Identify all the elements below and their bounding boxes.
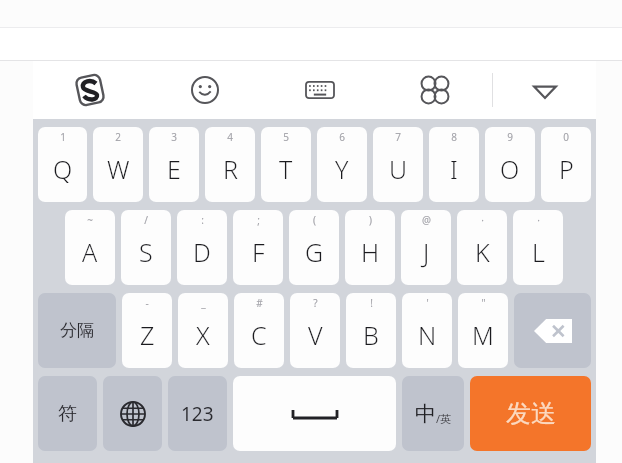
staticText: X: [196, 318, 210, 352]
staticText: :: [201, 213, 204, 227]
button[interactable]: 123: [168, 376, 227, 451]
button[interactable]: Switch input language: [103, 376, 162, 451]
button[interactable]: 3: [149, 127, 199, 202]
button[interactable]: 6: [317, 127, 367, 202]
staticText: ·: [481, 213, 484, 227]
button[interactable]: 1: [38, 127, 87, 202]
staticText: Y: [335, 152, 349, 186]
staticText: C: [251, 318, 267, 352]
staticText: 1: [60, 130, 66, 144]
staticText: U: [389, 152, 408, 186]
button[interactable]: Hide keyboard: [493, 61, 596, 119]
staticText: 2: [115, 130, 121, 144]
staticText: 中: [415, 401, 436, 427]
button[interactable]: ': [402, 293, 452, 368]
staticText: /: [144, 213, 148, 227]
staticText: 分隔: [60, 320, 94, 341]
staticText: 4: [227, 130, 233, 144]
staticText: K: [475, 235, 490, 269]
staticText: M: [472, 318, 494, 352]
staticText: #: [256, 296, 263, 310]
button[interactable]: Sogou input: [33, 61, 147, 119]
staticText: ?: [313, 296, 318, 310]
staticText: ~: [87, 213, 93, 227]
staticText: T: [279, 152, 293, 186]
staticText: W: [107, 152, 130, 186]
staticText: _: [201, 296, 206, 310]
staticText: ·: [537, 213, 540, 227]
button[interactable]: ~: [65, 210, 115, 285]
staticText: F: [252, 235, 265, 269]
staticText: S: [139, 235, 153, 269]
button[interactable]: Space: [233, 376, 396, 451]
staticText: 9: [507, 130, 513, 144]
button[interactable]: Keyboard settings: [262, 61, 377, 119]
button[interactable]: 8: [429, 127, 479, 202]
button[interactable]: 分隔: [38, 293, 116, 368]
staticText: H: [361, 235, 380, 269]
staticText: P: [559, 152, 574, 186]
button[interactable]: :: [177, 210, 227, 285]
button[interactable]: ?: [290, 293, 340, 368]
button[interactable]: Backspace: [514, 293, 591, 368]
button[interactable]: More features: [377, 61, 492, 119]
button[interactable]: _: [178, 293, 228, 368]
staticText: R: [223, 152, 238, 186]
staticText: ": [481, 296, 486, 310]
button[interactable]: Emoji: [147, 61, 262, 119]
staticText: ;: [257, 213, 260, 227]
button[interactable]: ": [458, 293, 508, 368]
button[interactable]: !: [346, 293, 396, 368]
button[interactable]: 发送: [470, 376, 591, 451]
button[interactable]: @: [401, 210, 451, 285]
staticText: 3: [171, 130, 177, 144]
staticText: D: [193, 235, 211, 269]
staticText: 8: [451, 130, 457, 144]
staticText: Z: [140, 318, 155, 352]
staticText: Q: [53, 152, 73, 186]
staticText: N: [418, 318, 437, 352]
button[interactable]: ): [345, 210, 395, 285]
button[interactable]: ;: [233, 210, 283, 285]
button[interactable]: /: [121, 210, 171, 285]
button[interactable]: 符: [38, 376, 97, 451]
staticText: -: [145, 296, 149, 310]
button[interactable]: ·: [513, 210, 563, 285]
staticText: E: [167, 152, 181, 186]
staticText: J: [423, 235, 430, 269]
staticText: 123: [181, 401, 214, 427]
staticText: 6: [339, 130, 345, 144]
staticText: 符: [58, 402, 77, 426]
staticText: L: [532, 235, 545, 269]
button[interactable]: 0: [541, 127, 591, 202]
button[interactable]: #: [234, 293, 284, 368]
staticText: !: [370, 296, 373, 310]
staticText: A: [82, 235, 98, 269]
staticText: ): [369, 213, 372, 227]
staticText: (: [313, 213, 316, 227]
button[interactable]: 2: [93, 127, 143, 202]
button[interactable]: 5: [261, 127, 311, 202]
button[interactable]: 4: [205, 127, 255, 202]
staticText: /英: [436, 411, 452, 426]
button[interactable]: 9: [485, 127, 535, 202]
staticText: O: [500, 152, 520, 186]
staticText: @: [422, 213, 431, 227]
staticText: 发送: [506, 398, 556, 429]
button[interactable]: 中: [402, 376, 464, 451]
staticText: V: [308, 318, 323, 352]
button[interactable]: 7: [373, 127, 423, 202]
staticText: 7: [395, 130, 401, 144]
staticText: G: [305, 235, 324, 269]
button[interactable]: -: [122, 293, 172, 368]
staticText: ': [426, 296, 429, 310]
staticText: 5: [283, 130, 289, 144]
button[interactable]: ·: [457, 210, 507, 285]
button[interactable]: (: [289, 210, 339, 285]
staticText: I: [450, 152, 458, 186]
staticText: 0: [563, 130, 569, 144]
staticText: B: [363, 318, 379, 352]
